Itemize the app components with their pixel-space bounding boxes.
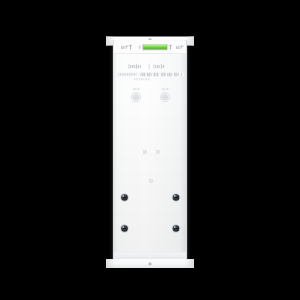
button[interactable]: Ruijie Reyee wall access point product p… bbox=[0, 0, 300, 300]
